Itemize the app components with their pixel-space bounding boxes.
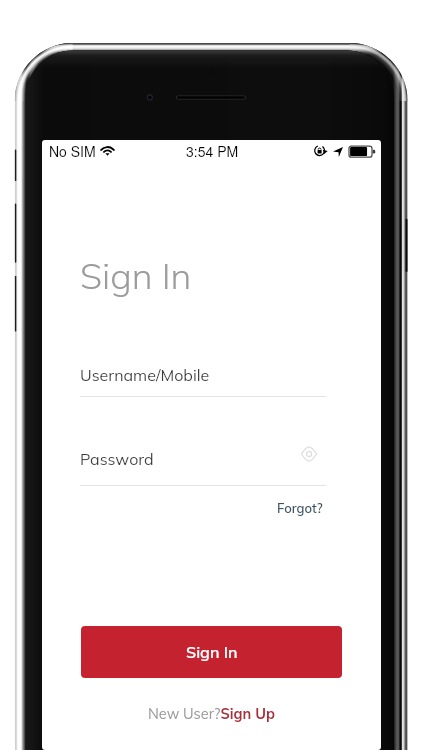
button[interactable]: Forgot? [277,500,323,516]
staticText: Password [80,449,154,469]
button[interactable]: Show password [297,443,321,465]
staticText: Username/Mobile [80,365,210,385]
staticText: Sign In [80,253,192,298]
button[interactable]: New User?Sign Up [148,704,276,722]
staticText: Forgot? [277,500,323,516]
staticText: 3:54 PM [186,141,239,161]
button[interactable]: Sign In [81,626,342,678]
staticText: No SIM [49,141,96,161]
staticText: New User?Sign Up [148,704,276,722]
staticText: Sign In [186,642,238,662]
button[interactable]: Password [80,449,326,486]
button[interactable]: Username/Mobile [80,365,326,397]
